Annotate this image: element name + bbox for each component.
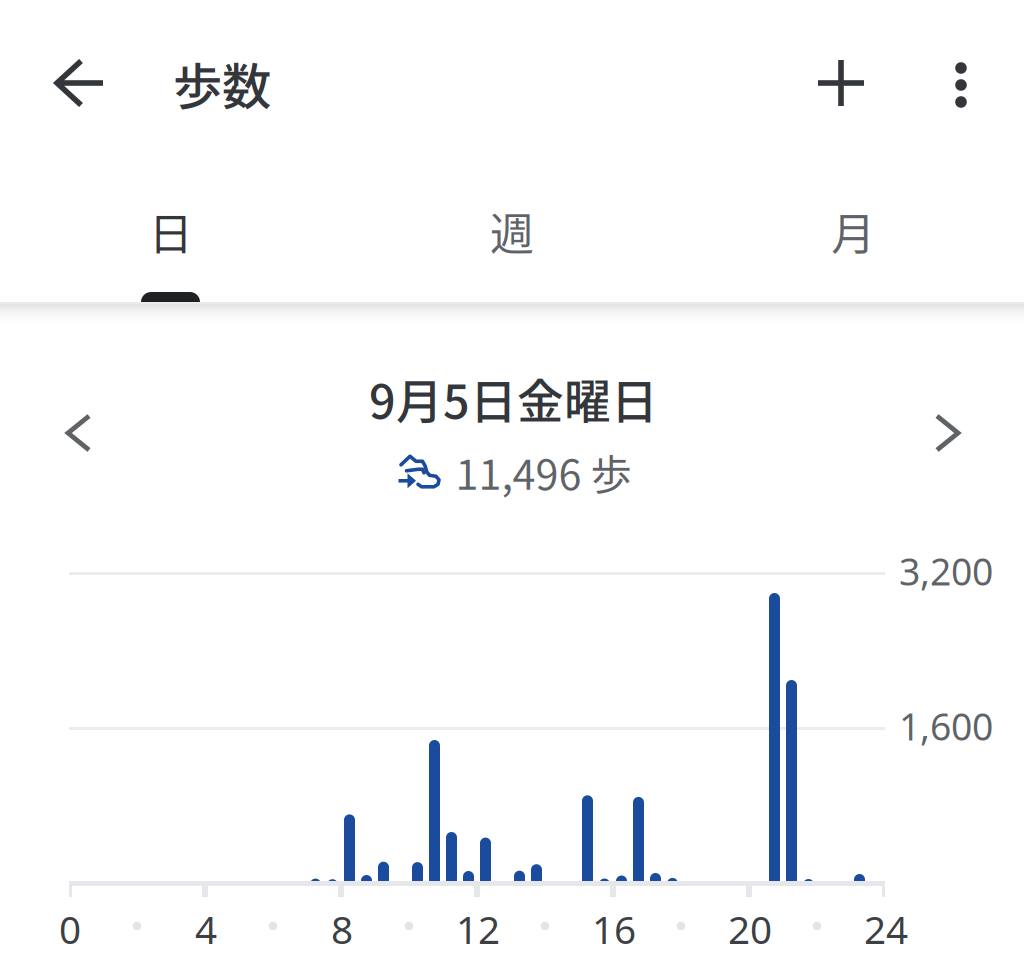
button[interactable]: 月 <box>683 133 1024 329</box>
staticText: 20 <box>728 903 772 955</box>
button[interactable]: 週 <box>341 133 683 329</box>
staticText: 1,600 <box>899 701 993 751</box>
staticText: 3,200 <box>899 546 993 596</box>
staticText: 0 <box>59 903 81 955</box>
staticText: 月 <box>831 199 875 263</box>
staticText: 24 <box>864 903 908 955</box>
staticText: 週 <box>490 199 534 263</box>
staticText: 11,496 歩 <box>455 442 631 502</box>
staticText: 8 <box>331 903 353 955</box>
button[interactable]: 追加 <box>799 33 883 133</box>
staticText: 歩数 <box>173 47 271 119</box>
staticText: 12 <box>456 903 500 955</box>
staticText: 9月5日金曜日 <box>369 364 658 432</box>
button[interactable]: 戻る <box>54 33 138 133</box>
button[interactable]: 日 <box>0 133 341 329</box>
staticText: 16 <box>592 903 636 955</box>
staticText: 日 <box>149 199 193 263</box>
button[interactable]: 前の日 <box>64 405 94 461</box>
button[interactable]: その他のオプション <box>919 33 1003 133</box>
button[interactable]: 次の日 <box>933 405 963 461</box>
staticText: 4 <box>195 903 217 955</box>
